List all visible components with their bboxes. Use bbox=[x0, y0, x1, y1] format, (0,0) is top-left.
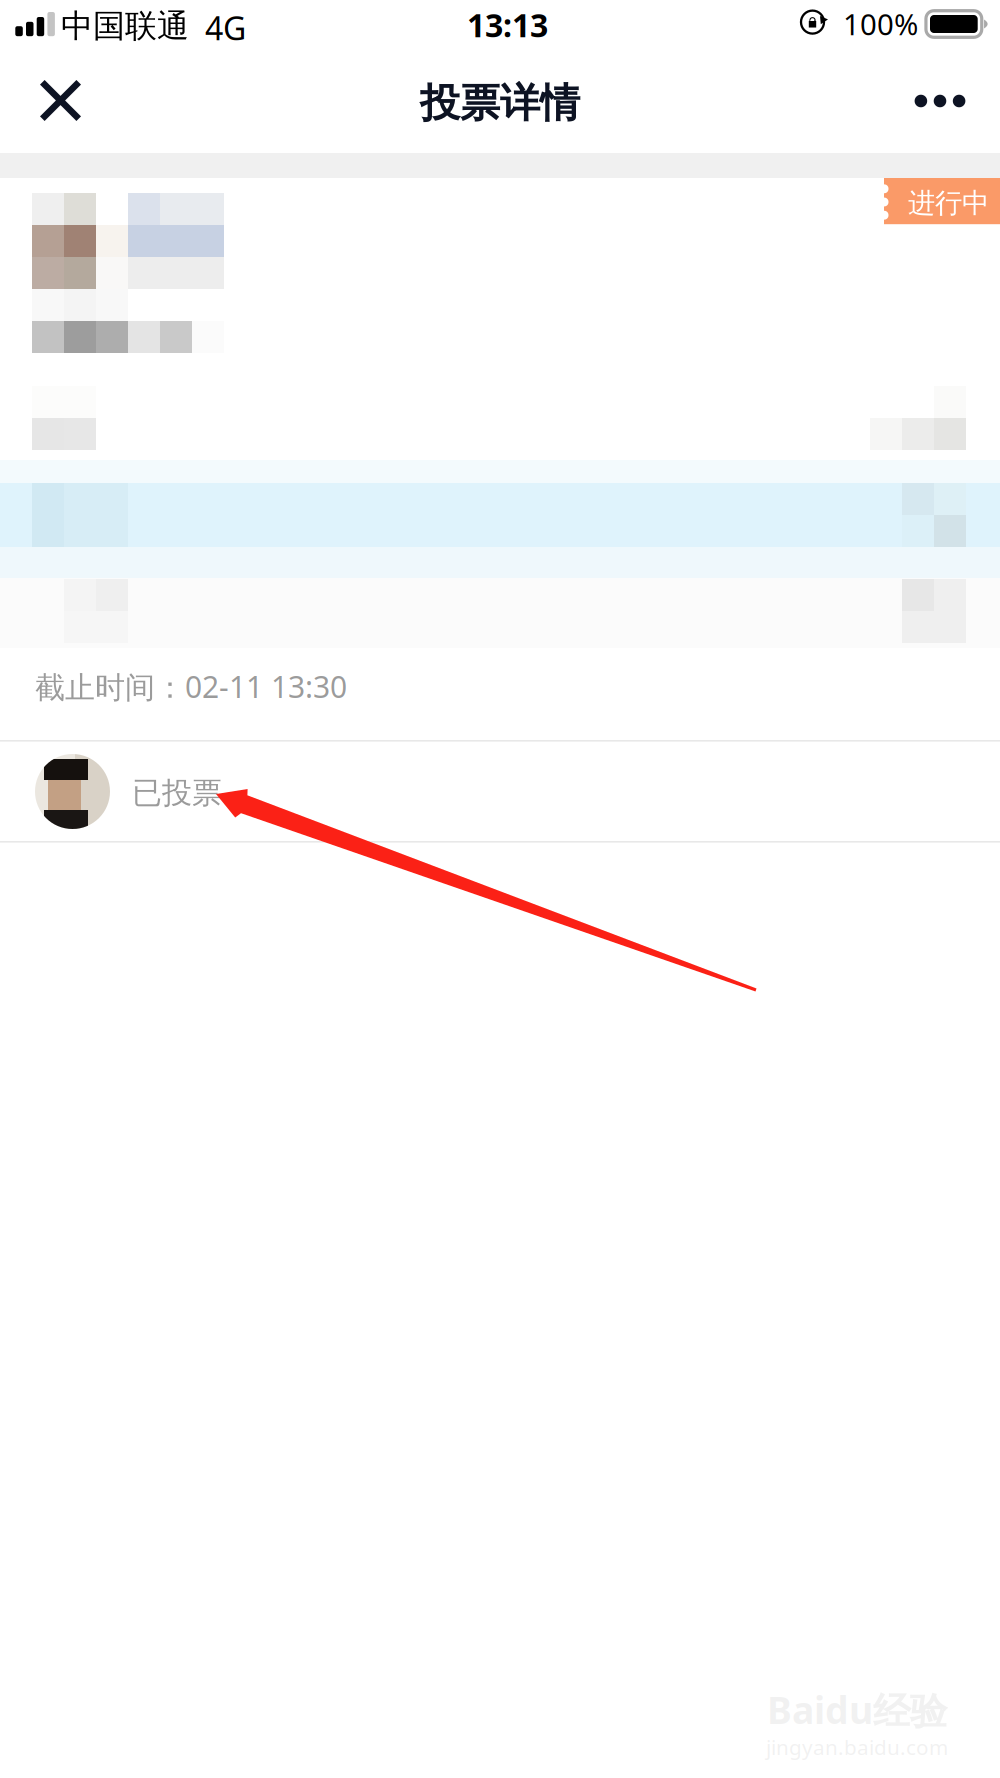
staticText: 进行中 bbox=[908, 186, 989, 220]
staticText: Baidu经验 bbox=[767, 1684, 947, 1735]
button[interactable]: 更多 bbox=[914, 94, 965, 107]
staticText: 4G bbox=[205, 6, 246, 50]
staticText: 中国联通 bbox=[61, 6, 189, 46]
staticText: 13:13 bbox=[467, 3, 548, 47]
staticText: 截止时间：02-11 13:30 bbox=[35, 666, 347, 707]
staticText: jingyan.baidu.com bbox=[766, 1733, 948, 1761]
staticText: 100% bbox=[843, 4, 918, 44]
staticText: 投票详情 bbox=[420, 78, 580, 128]
staticText: 已投票 bbox=[132, 774, 222, 812]
button[interactable]: 关闭 bbox=[40, 80, 81, 121]
button[interactable]: 已投票 bbox=[0, 742, 1000, 841]
